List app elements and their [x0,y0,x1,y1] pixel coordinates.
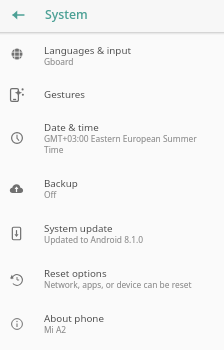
button[interactable]: Reset options [0,263,224,308]
button[interactable]: Back [7,4,29,26]
staticText: Gboard [44,57,74,68]
staticText: Off [44,190,57,201]
staticText: Languages & input [44,45,131,57]
staticText: System [45,6,88,23]
staticText: Date & time [44,122,99,134]
staticText: Gestures [44,89,86,101]
staticText: Reset options [44,268,107,280]
staticText: Mi A2 [44,325,67,336]
button[interactable]: Date & time [0,117,224,173]
staticText: Network, apps, or device can be reset [44,280,192,291]
staticText: System update [44,223,113,235]
button[interactable]: Backup [0,173,224,218]
staticText: Updated to Android 8.1.0 [44,235,144,246]
button[interactable]: Languages & input [0,40,224,84]
staticText: GMT+03:00 Eastern European Summer Time [44,134,198,156]
button[interactable]: About phone [0,308,224,350]
staticText: About phone [44,313,104,325]
button[interactable]: System update [0,218,224,263]
button[interactable]: Gestures [0,84,224,117]
staticText: Backup [44,178,78,190]
